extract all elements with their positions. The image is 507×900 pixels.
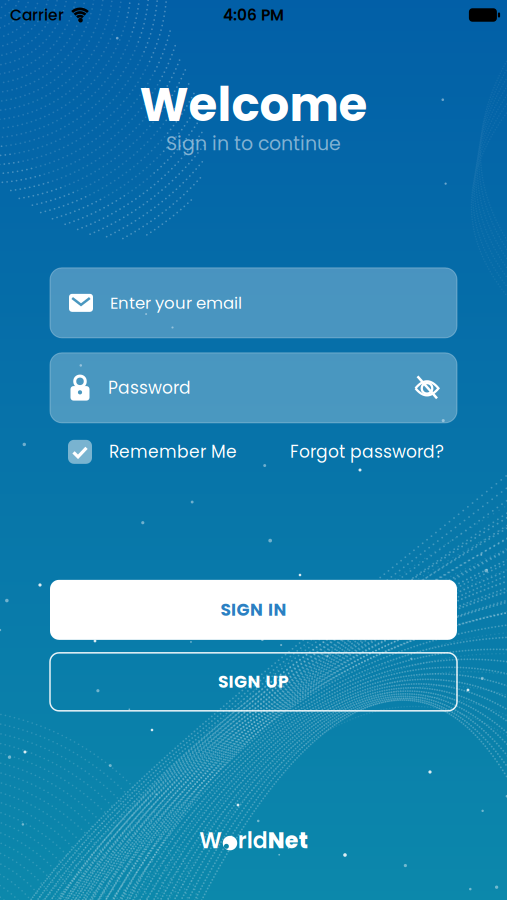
staticText: Welcome: [139, 72, 367, 137]
button[interactable]: Enter your email: [50, 268, 457, 338]
staticText: W: [199, 825, 222, 856]
staticText: Remember Me: [109, 440, 237, 464]
button[interactable]: SIGN UP: [50, 653, 457, 711]
button[interactable]: SIGN IN: [50, 580, 457, 640]
button[interactable]: Forgot password?: [290, 440, 444, 464]
staticText: Forgot password?: [290, 440, 444, 464]
button[interactable]: Show password: [411, 373, 443, 403]
button[interactable]: Remember Me: [68, 440, 237, 464]
staticText: rld: [238, 825, 268, 856]
staticText: 4:06 PM: [223, 4, 284, 26]
staticText: Carrier: [10, 4, 64, 26]
staticText: SIGN IN: [220, 598, 286, 622]
staticText: Sign in to continue: [166, 130, 341, 157]
button[interactable]: Password: [50, 353, 457, 423]
staticText: Enter your email: [110, 291, 242, 314]
staticText: SIGN UP: [218, 670, 289, 694]
staticText: Password: [108, 376, 191, 400]
staticText: Net: [268, 825, 308, 856]
